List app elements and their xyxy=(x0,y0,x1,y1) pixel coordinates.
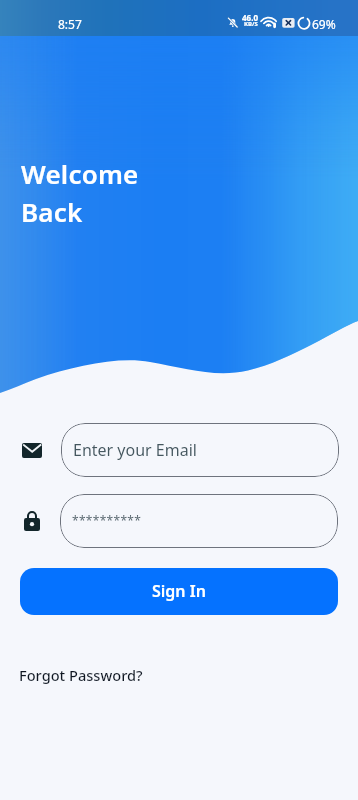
staticText: ********** xyxy=(72,512,142,528)
button[interactable]: Enter your Email xyxy=(61,423,339,477)
staticText: Enter your Email xyxy=(73,439,197,461)
other: Email xyxy=(22,439,42,461)
staticText: Sign In xyxy=(152,580,206,602)
staticText: Welcome xyxy=(21,156,139,191)
staticText: Forgot Password? xyxy=(19,665,143,685)
staticText: KB/S xyxy=(244,20,258,28)
staticText: 8:57 xyxy=(58,16,82,32)
button[interactable]: Forgot Password? xyxy=(19,665,143,685)
staticText: 46.0 xyxy=(242,12,258,23)
other: Password xyxy=(24,510,40,532)
button[interactable]: Sign In xyxy=(20,568,338,615)
staticText: 69% xyxy=(312,16,336,32)
button[interactable]: ********** xyxy=(60,494,338,548)
staticText: Back xyxy=(21,194,83,229)
